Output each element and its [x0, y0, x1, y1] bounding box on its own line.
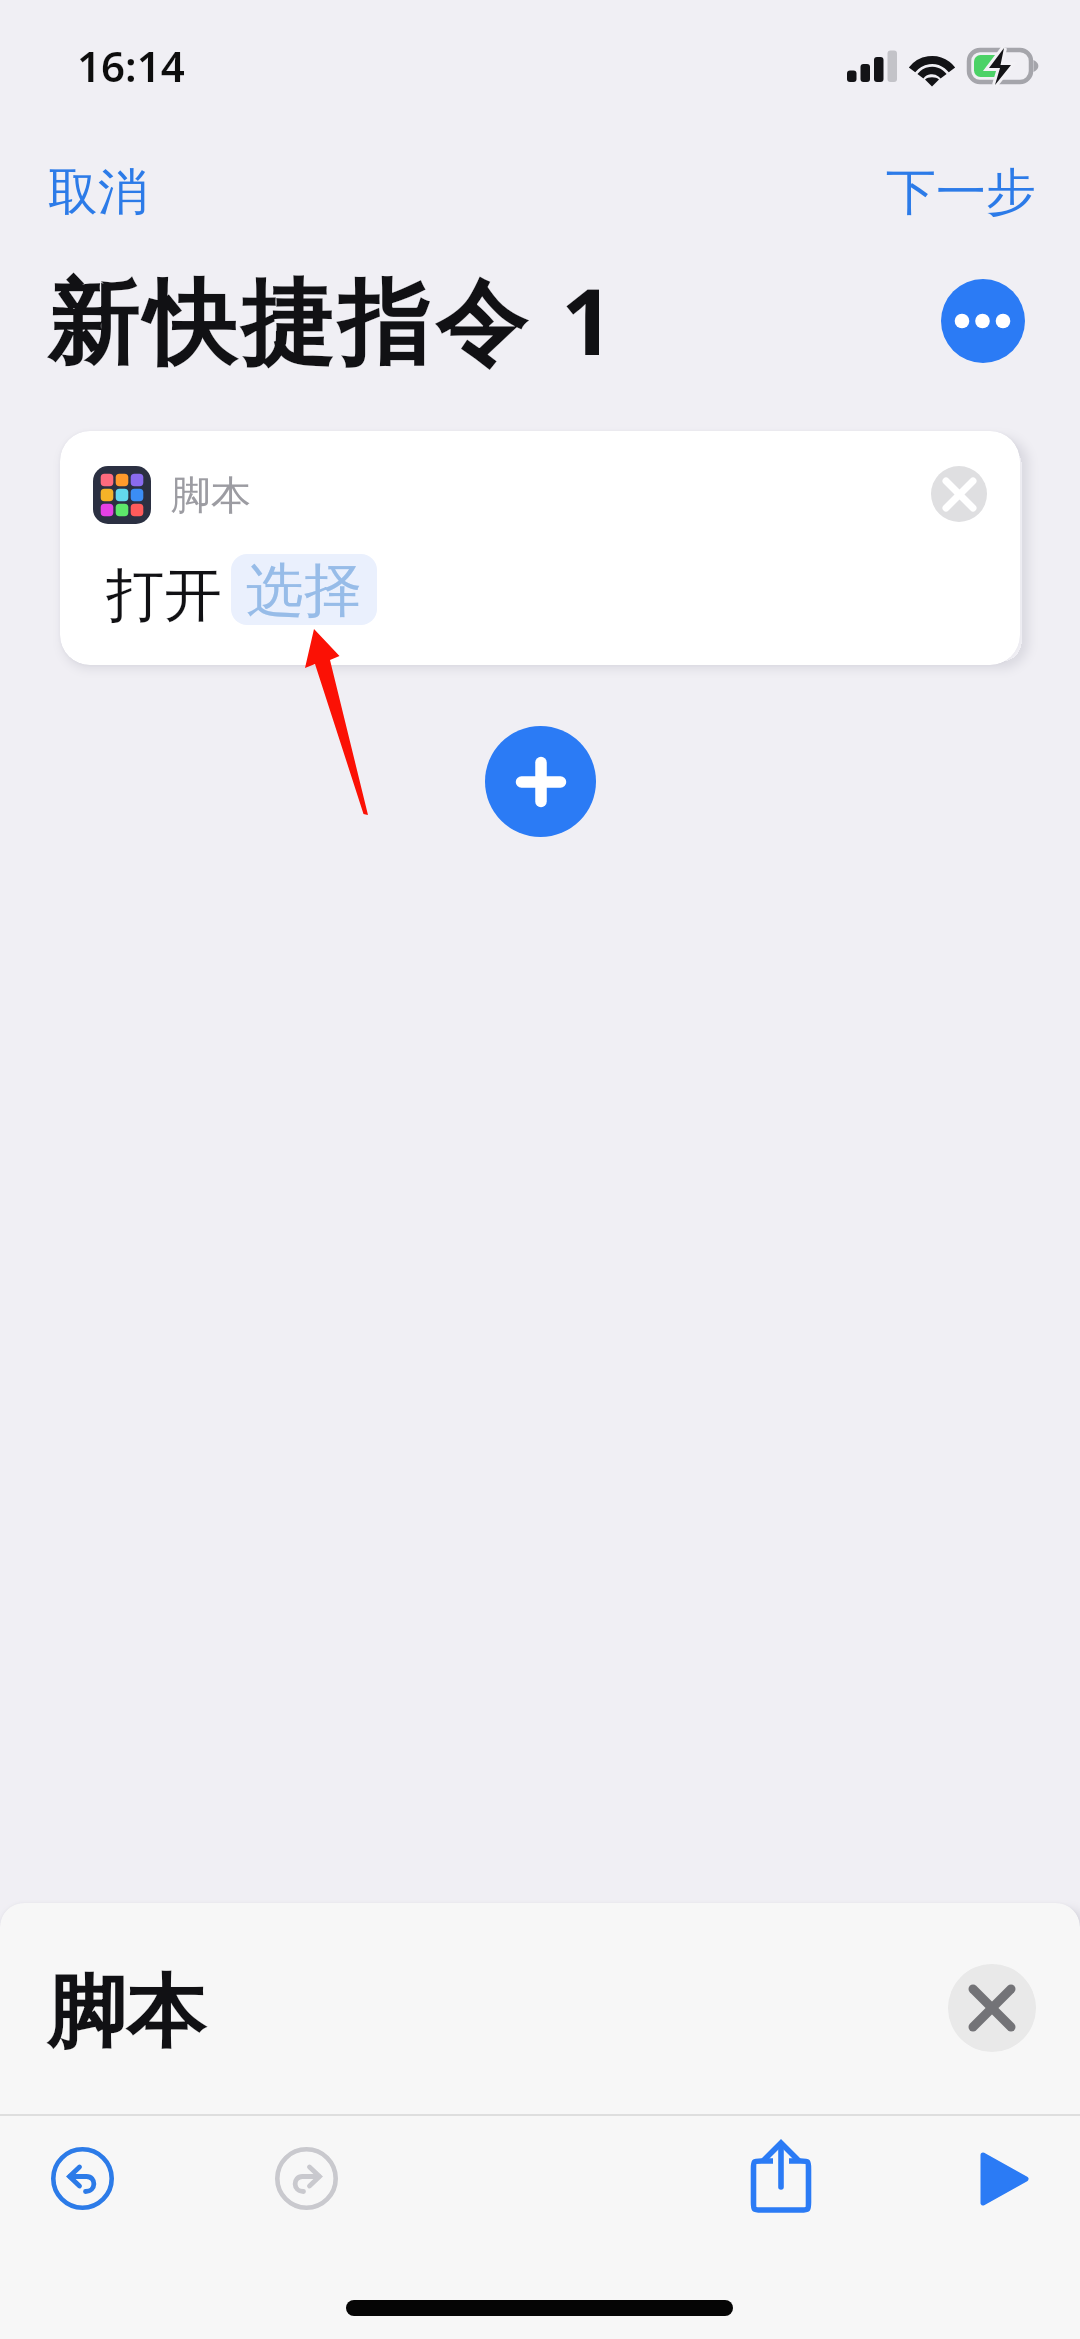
button[interactable]: Share	[731, 2126, 830, 2225]
button[interactable]: Redo	[257, 2129, 356, 2228]
button[interactable]: 脚本	[60, 431, 1020, 665]
button[interactable]: Close	[948, 1964, 1036, 2052]
button[interactable]: Remove action	[931, 466, 987, 522]
button[interactable]: More options	[941, 279, 1025, 363]
staticText: 取消	[48, 161, 148, 224]
button[interactable]: Run	[954, 2129, 1053, 2228]
button[interactable]: 选择	[231, 554, 377, 625]
staticText: 脚本	[47, 1963, 205, 2063]
button[interactable]: Add action	[485, 726, 596, 837]
staticText: 16:14	[77, 37, 185, 94]
button[interactable]: 下一步	[846, 147, 1076, 238]
staticText: 脚本	[171, 470, 251, 520]
button[interactable]: 取消	[8, 147, 188, 238]
staticText: 选择	[246, 554, 362, 625]
button[interactable]: Undo	[33, 2129, 132, 2228]
staticText: 打开	[106, 559, 222, 632]
staticText: 新快捷指令 1	[47, 257, 619, 383]
staticText: 下一步	[886, 161, 1036, 224]
